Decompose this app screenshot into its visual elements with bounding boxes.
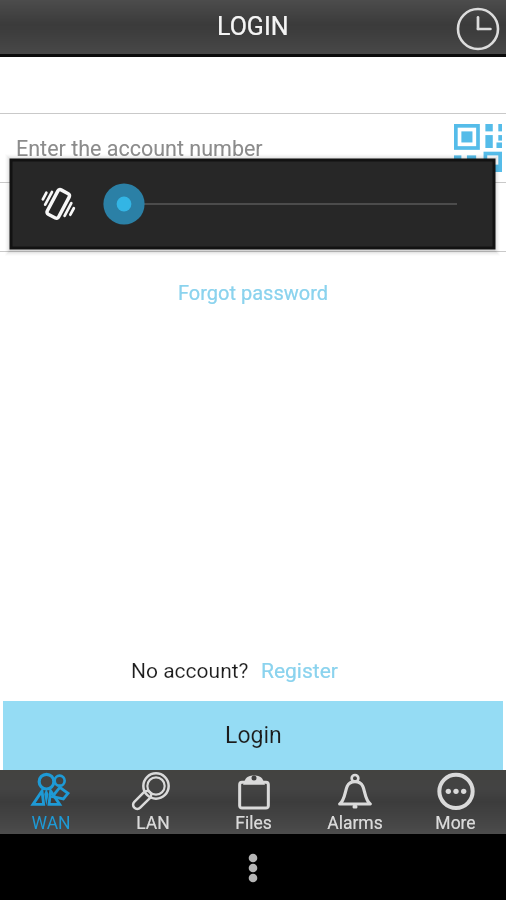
staticText: More bbox=[435, 813, 476, 834]
staticText: LOGIN bbox=[217, 12, 289, 41]
button[interactable]: History bbox=[451, 0, 505, 54]
button[interactable]: Login bbox=[3, 701, 503, 770]
staticText: Enter the account number bbox=[16, 136, 263, 161]
button[interactable]: Scan QR code bbox=[450, 120, 506, 176]
staticText: Files bbox=[235, 813, 272, 834]
staticText: LAN bbox=[136, 813, 170, 834]
button[interactable]: WAN bbox=[0, 770, 102, 834]
button[interactable]: More options bbox=[229, 843, 277, 891]
button[interactable]: Register bbox=[261, 659, 338, 684]
button[interactable]: Alarms bbox=[304, 770, 405, 834]
button[interactable]: Files bbox=[203, 770, 304, 834]
staticText: WAN bbox=[31, 813, 71, 834]
staticText: Alarms bbox=[327, 813, 383, 834]
button[interactable]: Forgot password bbox=[168, 278, 339, 307]
staticText: Login bbox=[225, 722, 282, 749]
button[interactable]: LAN bbox=[102, 770, 203, 834]
staticText: No account? bbox=[131, 659, 249, 684]
button[interactable]: More bbox=[405, 770, 506, 834]
staticText: Enter password bbox=[16, 205, 165, 230]
